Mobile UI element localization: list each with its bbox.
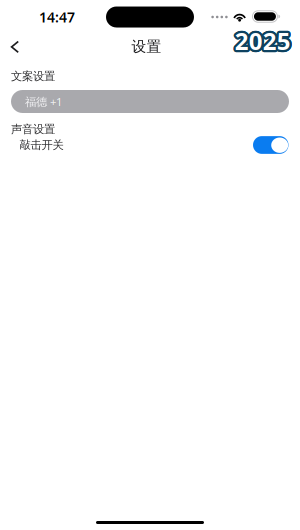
staticText: 2025 [234, 22, 290, 55]
staticText: 2025 [235, 25, 291, 58]
staticText: 2025 [235, 22, 291, 55]
staticText: 2025 [237, 23, 293, 56]
staticText: 2025 [236, 23, 292, 56]
staticText: 2025 [233, 25, 289, 57]
staticText: 2025 [234, 23, 290, 56]
staticText: 2025 [235, 27, 291, 59]
staticText: 2025 [233, 24, 289, 57]
staticText: 2025 [234, 25, 290, 58]
staticText: 2025 [234, 23, 290, 56]
staticText: 2025 [234, 24, 290, 57]
staticText: 2025 [236, 23, 292, 56]
staticText: 2025 [235, 24, 291, 57]
staticText: 2025 [235, 25, 291, 58]
staticText: 2025 [235, 24, 291, 56]
staticText: 2025 [233, 23, 289, 56]
staticText: 2025 [234, 24, 290, 56]
staticText: 2025 [235, 26, 291, 58]
staticText: 敲击开关 [19, 138, 63, 152]
staticText: 2025 [235, 25, 291, 57]
button[interactable]: Back [0, 33, 30, 61]
staticText: 2025 [233, 26, 289, 59]
staticText: 2025 [233, 26, 289, 58]
staticText: 2025 [234, 26, 290, 59]
staticText: 2025 [234, 23, 290, 56]
staticText: 2025 [236, 26, 292, 59]
staticText: 2025 [235, 23, 291, 56]
staticText: 2025 [235, 25, 291, 58]
staticText: 2025 [235, 22, 291, 55]
staticText: 2025 [235, 24, 291, 56]
staticText: 2025 [233, 24, 289, 56]
staticText: 2025 [233, 24, 289, 57]
staticText: 2025 [236, 23, 292, 55]
staticText: 2025 [235, 26, 291, 58]
staticText: 2025 [234, 26, 290, 58]
staticText: 2025 [236, 24, 292, 57]
staticText: 2025 [235, 25, 291, 58]
staticText: 2025 [233, 25, 289, 58]
staticText: 2025 [235, 24, 291, 57]
staticText: 2025 [233, 24, 289, 57]
staticText: 2025 [236, 25, 292, 57]
staticText: 2025 [235, 24, 291, 57]
staticText: 2025 [236, 25, 292, 58]
staticText: 2025 [235, 25, 291, 57]
staticText: 2025 [234, 24, 290, 57]
staticText: 声音设置 [11, 122, 55, 136]
staticText: 14:47 [39, 7, 75, 27]
staticText: 2025 [236, 25, 292, 58]
staticText: 文案设置 [11, 69, 55, 83]
staticText: 2025 [236, 24, 292, 57]
staticText: 2025 [237, 24, 293, 56]
staticText: 2025 [233, 23, 289, 55]
staticText: 设置 [131, 37, 161, 56]
button[interactable]: 敲击开关 [0, 134, 300, 156]
staticText: 2025 [234, 25, 290, 57]
button[interactable]: 福德 +1 [11, 90, 289, 113]
staticText: 福德 +1 [25, 94, 62, 109]
staticText: 2025 [235, 24, 291, 56]
staticText: 2025 [237, 24, 293, 57]
staticText: 2025 [235, 24, 291, 56]
staticText: 2025 [235, 26, 291, 59]
staticText: 2025 [234, 24, 290, 57]
staticText: 2025 [234, 25, 290, 58]
staticText: 2025 [234, 25, 290, 57]
staticText: 2025 [235, 23, 291, 56]
staticText: 2025 [237, 26, 293, 58]
staticText: 2025 [237, 25, 293, 58]
staticText: 2025 [236, 24, 292, 57]
staticText: 2025 [234, 25, 290, 58]
